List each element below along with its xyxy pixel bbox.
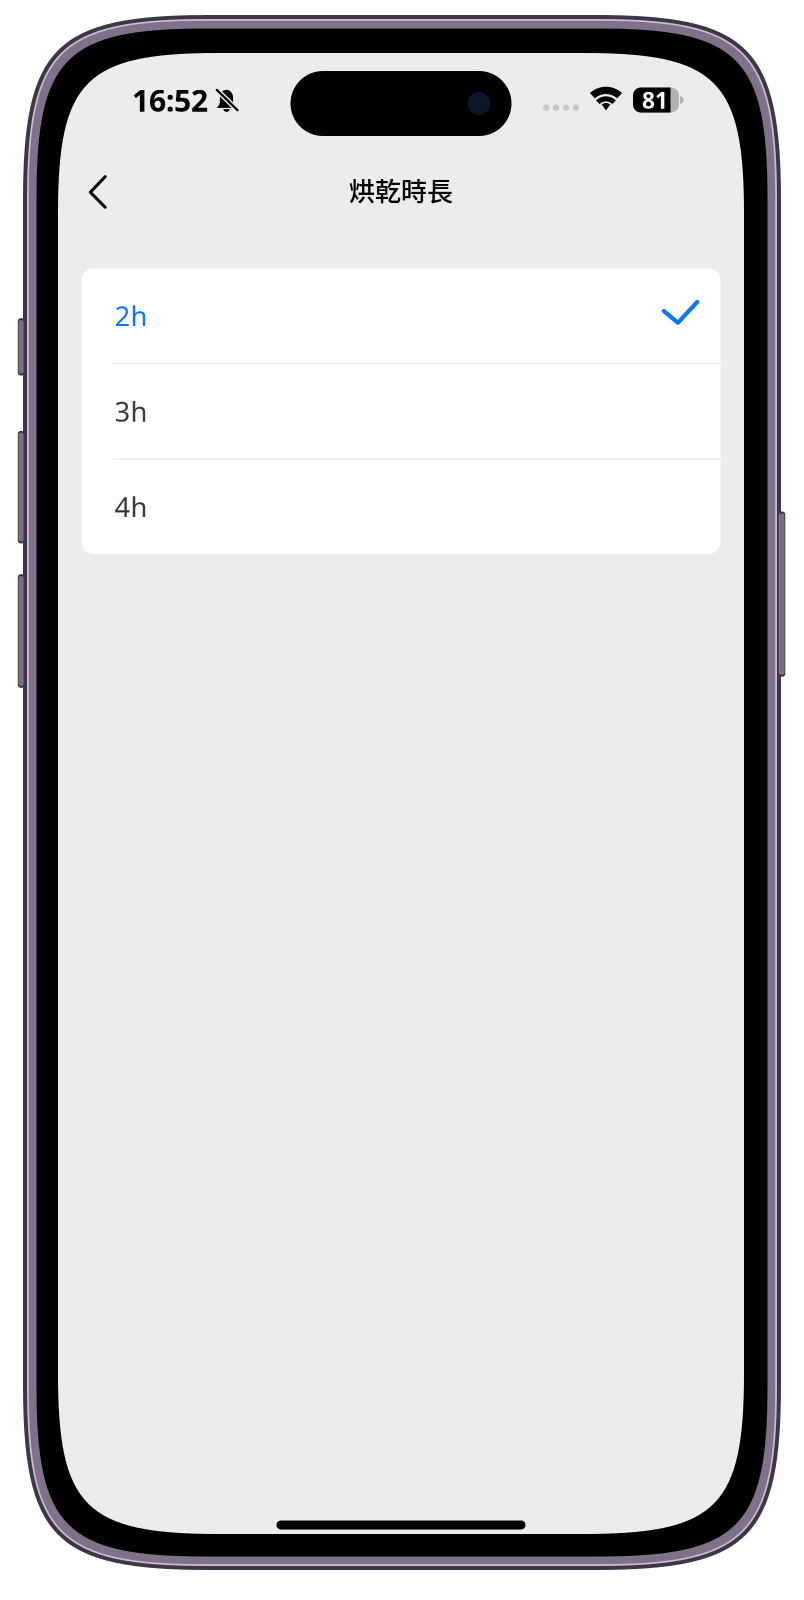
button[interactable]: 3h <box>81 364 720 458</box>
staticText: 4h <box>114 489 147 525</box>
button[interactable]: 2h <box>81 268 720 363</box>
button[interactable]: Back <box>73 161 129 223</box>
staticText: 烘乾時長 <box>349 171 453 208</box>
button[interactable]: 4h <box>81 459 720 554</box>
staticText: 2h <box>114 298 147 334</box>
staticText: 16:52 <box>132 80 208 120</box>
staticText: 81 <box>642 85 668 115</box>
staticText: 3h <box>114 393 147 429</box>
